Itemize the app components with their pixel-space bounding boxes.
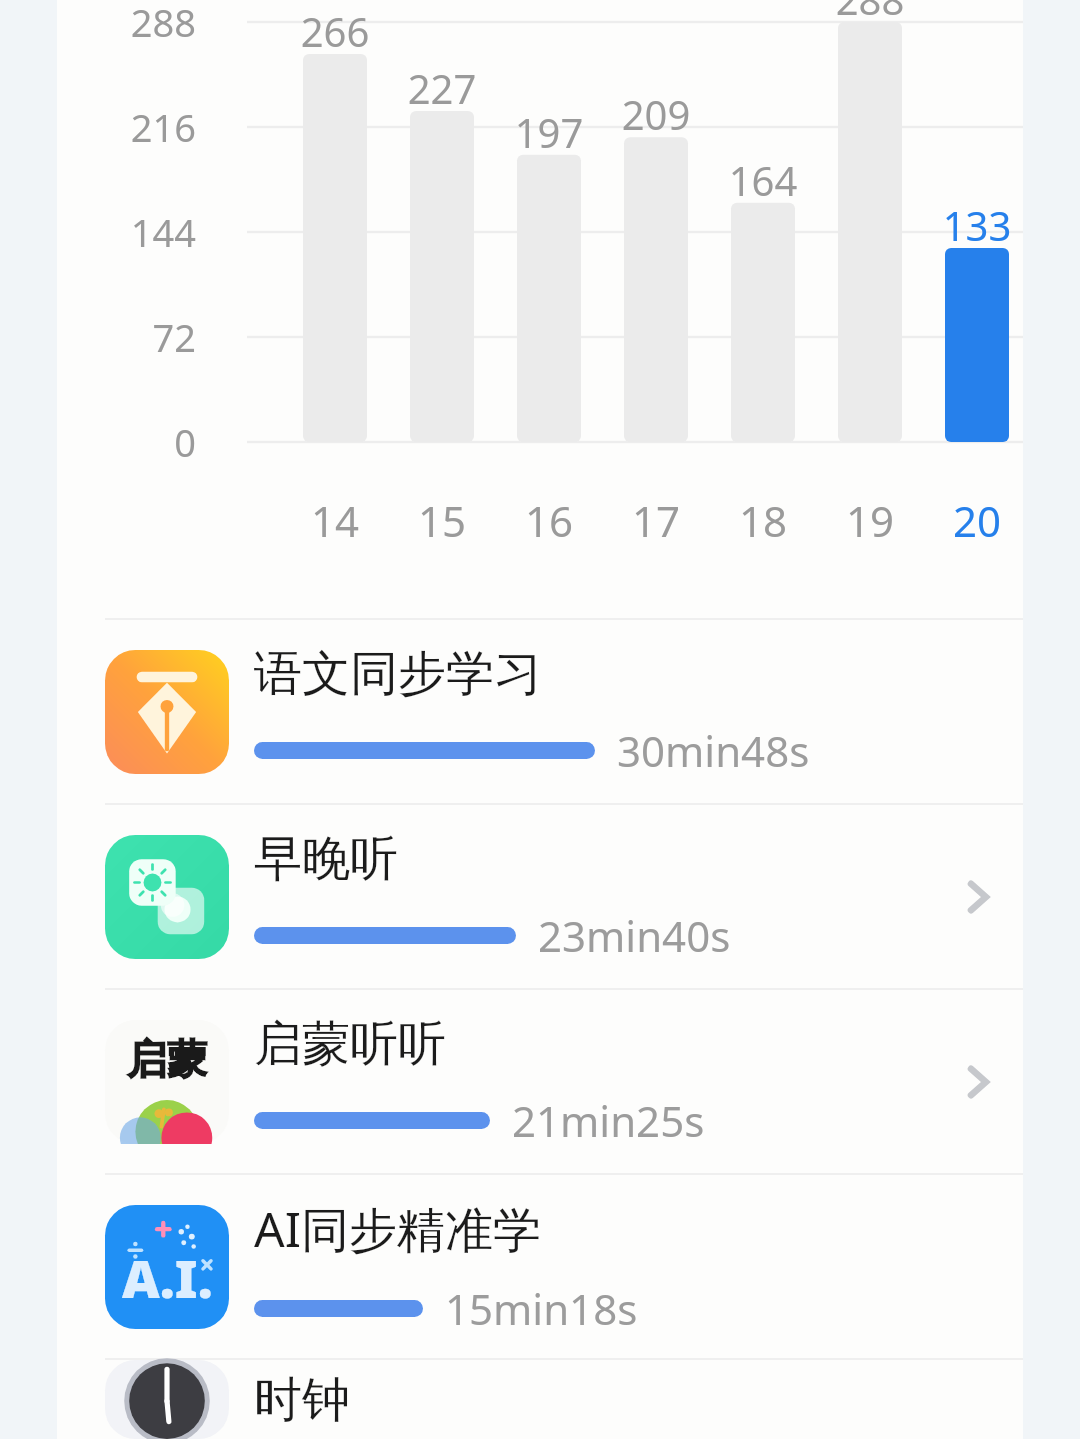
staticText: AI同步精准学 xyxy=(254,1196,541,1262)
button[interactable]: Open 启蒙听听 details xyxy=(943,1047,1013,1117)
staticText: 164 xyxy=(693,153,833,207)
staticText: 启蒙 xyxy=(127,1034,207,1084)
staticText: 30min48s xyxy=(617,722,810,779)
staticText: 144 xyxy=(57,206,196,258)
button[interactable]: 语文同步学习 xyxy=(57,620,1023,803)
staticText: 209 xyxy=(586,87,726,141)
button[interactable]: 早晚听 xyxy=(57,805,1023,988)
button[interactable]: 启蒙 xyxy=(57,990,1023,1173)
staticText: 197 xyxy=(479,105,619,159)
staticText: 启蒙听听 xyxy=(254,1014,446,1074)
staticText: 19 xyxy=(800,492,940,549)
staticText: 227 xyxy=(372,61,512,115)
staticText: 21min25s xyxy=(512,1092,705,1149)
button[interactable]: A.I. xyxy=(57,1175,1023,1358)
staticText: 15 xyxy=(372,492,512,549)
staticText: 23min40s xyxy=(538,907,731,964)
staticText: 20 xyxy=(907,492,1047,549)
staticText: A.I. xyxy=(122,1242,213,1313)
staticText: 133 xyxy=(907,198,1047,252)
staticText: 288 xyxy=(800,0,940,26)
button[interactable]: 时钟 xyxy=(57,1360,1023,1439)
staticText: 15min18s xyxy=(445,1280,638,1337)
staticText: 16 xyxy=(479,492,619,549)
staticText: 14 xyxy=(265,492,405,549)
staticText: 0 xyxy=(57,416,196,468)
staticText: 时钟 xyxy=(254,1370,350,1430)
staticText: 216 xyxy=(57,101,196,153)
staticText: 17 xyxy=(586,492,726,549)
staticText: 18 xyxy=(693,492,833,549)
staticText: 语文同步学习 xyxy=(254,644,542,704)
button[interactable]: Open 早晚听 details xyxy=(943,862,1013,932)
staticText: 早晚听 xyxy=(254,829,398,889)
staticText: 266 xyxy=(265,4,405,58)
staticText: 72 xyxy=(57,311,196,363)
staticText: 288 xyxy=(57,0,196,48)
